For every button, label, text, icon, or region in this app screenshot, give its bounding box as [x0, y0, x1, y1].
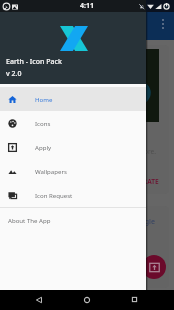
button[interactable]: Home — [77, 290, 96, 309]
staticText: v 2.0 — [6, 69, 22, 79]
button[interactable]: Icons — [0, 111, 146, 135]
staticText: 4:11 — [80, 1, 94, 11]
button[interactable]: Recents — [125, 290, 144, 309]
staticText: About The App — [8, 216, 51, 224]
button[interactable]: Home — [0, 87, 146, 111]
button[interactable]: Icon Request — [0, 183, 146, 207]
button[interactable]: Join the community on Google — [5, 206, 169, 288]
button[interactable]: Back — [29, 290, 48, 309]
staticText: Apply — [35, 143, 52, 151]
staticText: Icon Request — [35, 191, 73, 199]
button[interactable]: More options — [162, 19, 164, 29]
staticText: Earth - Icon Pack — [6, 57, 62, 67]
button[interactable]: Apply icon pack — [142, 255, 166, 279]
staticText: Wallpapers — [35, 167, 67, 175]
staticText: Home — [35, 95, 53, 103]
staticText: Like the icon pack? Rate it on the Play … — [13, 147, 156, 156]
button[interactable]: About The App — [0, 208, 146, 232]
staticText: RATE — [143, 177, 159, 186]
button[interactable]: Apply — [0, 135, 146, 159]
button[interactable]: RATE — [143, 177, 159, 186]
staticText: Icons — [35, 119, 51, 127]
staticText: Join the community on Google — [13, 217, 155, 227]
button[interactable]: Wallpapers — [0, 159, 146, 183]
button[interactable]: Like the icon pack? Rate it on the Play … — [5, 45, 169, 194]
